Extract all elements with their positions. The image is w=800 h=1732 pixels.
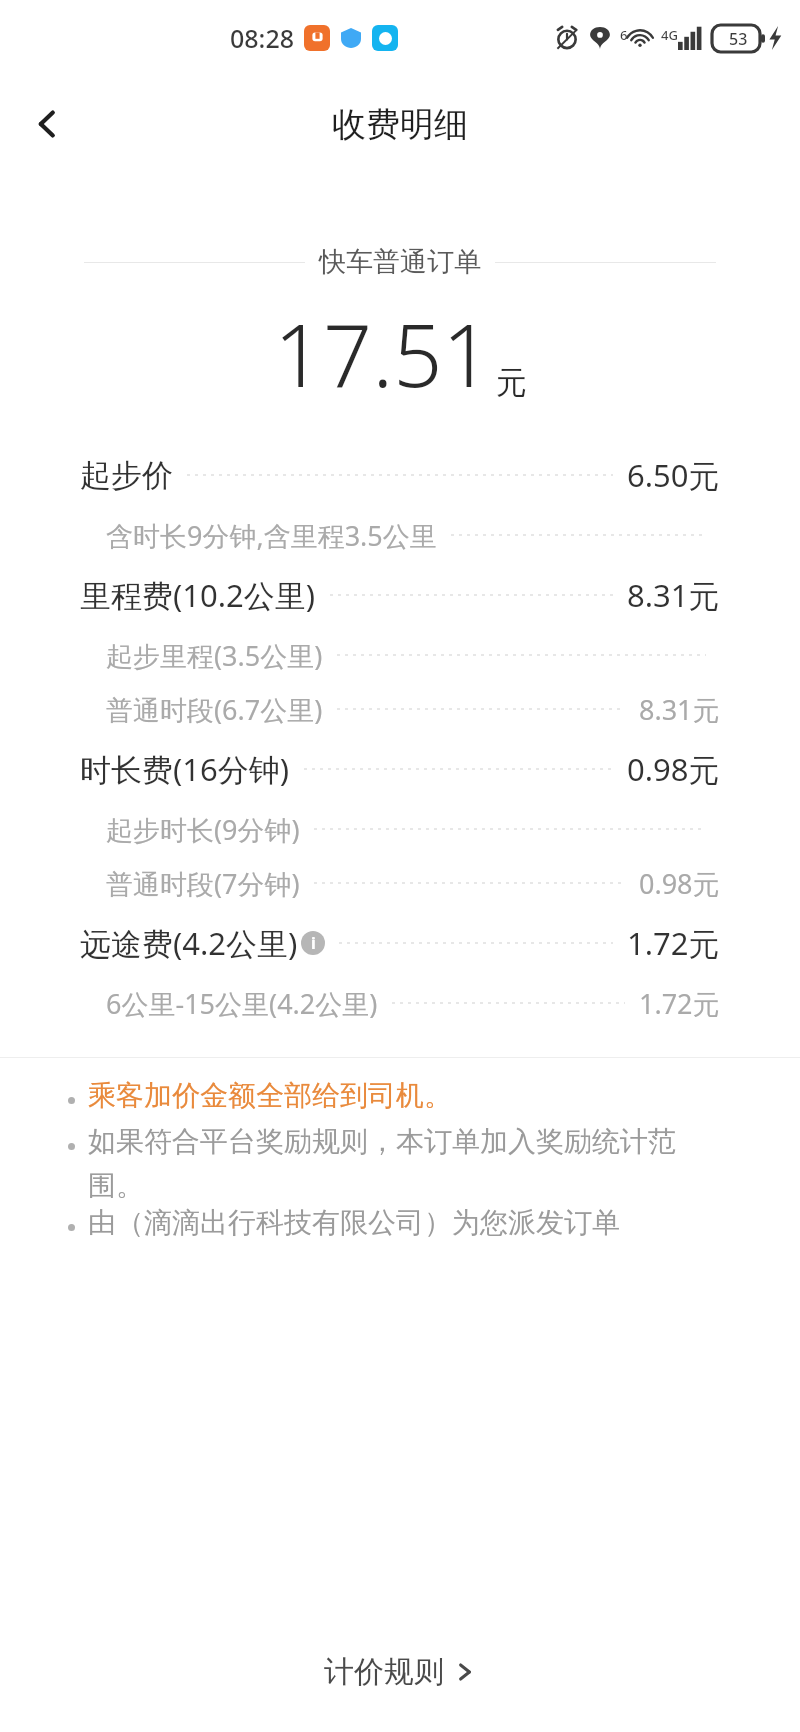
staticText: 如果符合平台奖励规则，本订单加入奖励统计范围。 [88, 1124, 722, 1203]
staticText: 起步里程(3.5公里) [106, 637, 323, 674]
staticText: 1.72元 [627, 922, 720, 964]
staticText: 起步时长(9分钟) [106, 811, 300, 848]
button[interactable]: 起步价 [80, 442, 720, 508]
staticText: 由（滴滴出行科技有限公司）为您派发订单 [88, 1205, 620, 1240]
staticText: 收费明细 [332, 103, 468, 146]
staticText: 里程费(10.2公里) [80, 574, 316, 616]
staticText: 时长费(16分钟) [80, 748, 290, 790]
button[interactable]: 时长费(16分钟) [80, 736, 720, 802]
staticText: 6 [620, 26, 628, 44]
staticText: 起步价 [80, 456, 173, 495]
staticText: 08:28 [230, 21, 295, 55]
staticText: 53 [729, 28, 748, 50]
button[interactable]: 远途费(4.2公里) [80, 910, 720, 976]
staticText: 8.31元 [639, 691, 720, 728]
staticText: 远途费(4.2公里) [80, 922, 298, 964]
staticText: 6.50元 [627, 454, 720, 496]
staticText: 8.31元 [627, 574, 720, 616]
button[interactable]: 计价规则 [300, 1641, 500, 1703]
staticText: 0.98元 [627, 748, 720, 790]
staticText: 1.72元 [639, 985, 720, 1022]
staticText: 含时长9分钟,含里程3.5公里 [106, 517, 437, 554]
button[interactable]: Back [16, 92, 80, 156]
button[interactable]: 里程费(10.2公里) [80, 562, 720, 628]
staticText: 6公里-15公里(4.2公里) [106, 985, 378, 1022]
staticText: 17.51 [274, 295, 492, 412]
staticText: 计价规则 [324, 1653, 444, 1691]
staticText: 4G [661, 26, 678, 44]
staticText: 普通时段(6.7公里) [106, 691, 323, 728]
staticText: 元 [496, 363, 527, 402]
staticText: 快车普通订单 [319, 245, 481, 279]
staticText: 普通时段(7分钟) [106, 865, 300, 902]
staticText: i [311, 932, 316, 954]
staticText: 乘客加价金额全部给到司机。 [88, 1078, 452, 1113]
staticText: 0.98元 [639, 865, 720, 902]
